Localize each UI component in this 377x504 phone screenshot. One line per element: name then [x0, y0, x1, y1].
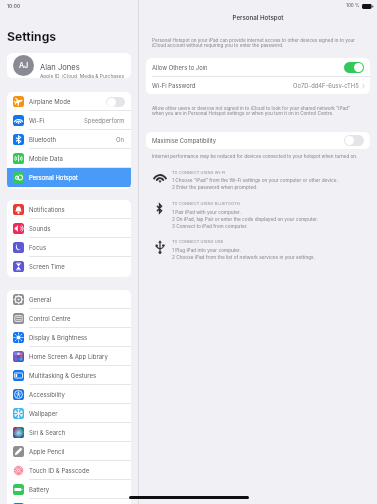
staticText: 10:00	[7, 3, 21, 9]
staticText: Display & Brightness	[29, 334, 88, 341]
staticText: On	[116, 136, 125, 143]
staticText: Internet performance may be reduced for …	[152, 153, 360, 159]
button[interactable]: AJ	[7, 53, 131, 78]
staticText: Wi-Fi Password	[152, 82, 196, 89]
button[interactable]: Control Centre	[7, 309, 131, 328]
button[interactable]: Personal Hotspot	[7, 168, 131, 187]
button[interactable]: Battery	[7, 480, 131, 499]
staticText: Mobile Data	[29, 155, 63, 162]
staticText: TO CONNECT USING USB	[172, 239, 224, 244]
staticText: General	[29, 296, 52, 303]
button[interactable]: Multitasking & Gestures	[7, 366, 131, 385]
staticText: Battery	[29, 486, 50, 493]
button[interactable]: Wallpaper	[7, 404, 131, 423]
staticText: TO CONNECT USING BLUETOOTH	[172, 201, 240, 206]
button[interactable]: Allow Others to Join	[146, 58, 370, 77]
staticText: Allow other users or devices not signed …	[152, 105, 360, 116]
button[interactable]: Airplane Mode	[7, 92, 131, 111]
staticText: Sounds	[29, 225, 51, 232]
button[interactable]: Privacy & Security	[7, 499, 131, 504]
staticText: Siri & Search	[29, 429, 66, 436]
staticText: Focus	[29, 244, 47, 251]
staticText: Oo7D-dd4F-6usv-cTH5	[293, 82, 359, 89]
staticText: TO CONNECT USING WI-FI	[172, 170, 226, 175]
button[interactable]: Focus	[7, 238, 131, 257]
staticText: Accessibility	[29, 391, 65, 398]
staticText: Notifications	[29, 206, 65, 213]
staticText: Personal Hotspot	[139, 14, 377, 21]
button[interactable]: Home Screen & App Library	[7, 347, 131, 366]
staticText: Settings	[7, 29, 57, 44]
staticText: Airplane Mode	[29, 98, 71, 105]
button[interactable]: Off	[106, 97, 125, 107]
staticText: Multitasking & Gestures	[29, 372, 97, 379]
staticText: Alan Jones	[40, 63, 80, 72]
staticText: Personal Hotspot on your iPad can provid…	[152, 37, 360, 48]
staticText: Speedperform	[84, 117, 125, 124]
staticText: Wallpaper	[29, 410, 58, 417]
button[interactable]: Display & Brightness	[7, 328, 131, 347]
staticText: Apple ID, iCloud, Media & Purchases	[40, 73, 125, 78]
button[interactable]: Wi-Fi	[7, 111, 131, 130]
staticText: 100 %	[346, 3, 360, 9]
button[interactable]: Sounds	[7, 219, 131, 238]
staticText: Apple Pencil	[29, 448, 65, 455]
button[interactable]: Notifications	[7, 200, 131, 219]
staticText: Allow Others to Join	[152, 64, 208, 71]
staticText: Bluetooth	[29, 136, 57, 143]
button[interactable]: Wi-Fi Password	[146, 77, 370, 94]
button[interactable]: Siri & Search	[7, 423, 131, 442]
staticText: Touch ID & Passcode	[29, 467, 90, 474]
button[interactable]: Accessibility	[7, 385, 131, 404]
staticText: AJ	[19, 61, 29, 70]
button[interactable]: Screen Time	[7, 257, 131, 276]
staticText: 1 Pair iPad with your computer. 2 On iPa…	[172, 209, 319, 229]
button[interactable]: Mobile Data	[7, 149, 131, 168]
button[interactable]: Apple Pencil	[7, 442, 131, 461]
staticText: Screen Time	[29, 263, 65, 270]
button[interactable]: On	[344, 62, 364, 73]
button[interactable]: Bluetooth	[7, 130, 131, 149]
button[interactable]: Touch ID & Passcode	[7, 461, 131, 480]
staticText: 1 Plug iPad into your computer. 2 Choose…	[172, 247, 315, 260]
staticText: Personal Hotspot	[29, 174, 78, 181]
staticText: Control Centre	[29, 315, 71, 322]
staticText: 1 Choose "iPad" from the Wi-Fi settings …	[172, 177, 338, 190]
button[interactable]: Off	[344, 135, 364, 146]
staticText: Wi-Fi	[29, 117, 45, 124]
button[interactable]: General	[7, 290, 131, 309]
staticText: Maximise Compatibility	[152, 137, 217, 144]
button[interactable]: Maximise Compatibility	[146, 132, 370, 149]
staticText: Home Screen & App Library	[29, 353, 108, 360]
